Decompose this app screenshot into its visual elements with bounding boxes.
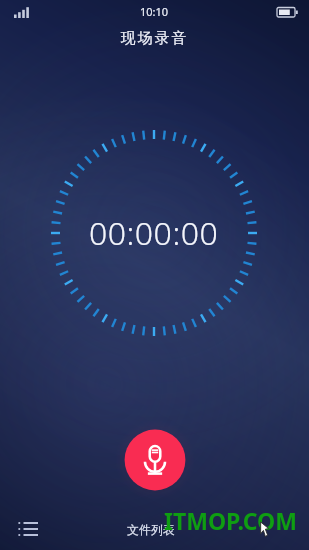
button[interactable]: Record — [115, 420, 195, 500]
staticText: 现场录音 — [0, 29, 309, 48]
staticText: 00:00:00 — [89, 211, 219, 255]
staticText: 文件列表 — [127, 522, 175, 537]
button[interactable]: 文件列表 — [124, 514, 178, 544]
button[interactable]: File list — [7, 514, 49, 544]
staticText: ITMOP.COM — [164, 505, 297, 536]
staticText: 10:10 — [140, 4, 169, 19]
